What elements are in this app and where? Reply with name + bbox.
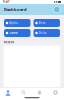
staticText: Dashboard [4,7,27,12]
button[interactable]: Settings [48,90,64,96]
button[interactable]: Notifications [32,90,48,96]
button[interactable]: Gamma [4,29,30,37]
staticText: Delta [39,31,46,35]
button[interactable]: Search [16,90,32,96]
staticText: Beta [39,21,45,25]
staticText: Recent [4,40,14,44]
button[interactable]: Beta [33,19,60,27]
button[interactable]: Alpha [4,19,30,27]
staticText: Alpha [9,21,17,25]
button[interactable]: Profile [0,90,16,96]
button[interactable]: Profile [54,6,60,13]
staticText: 9:41 [3,0,10,4]
button[interactable]: Delta [33,29,60,37]
staticText: Gamma [9,31,17,35]
